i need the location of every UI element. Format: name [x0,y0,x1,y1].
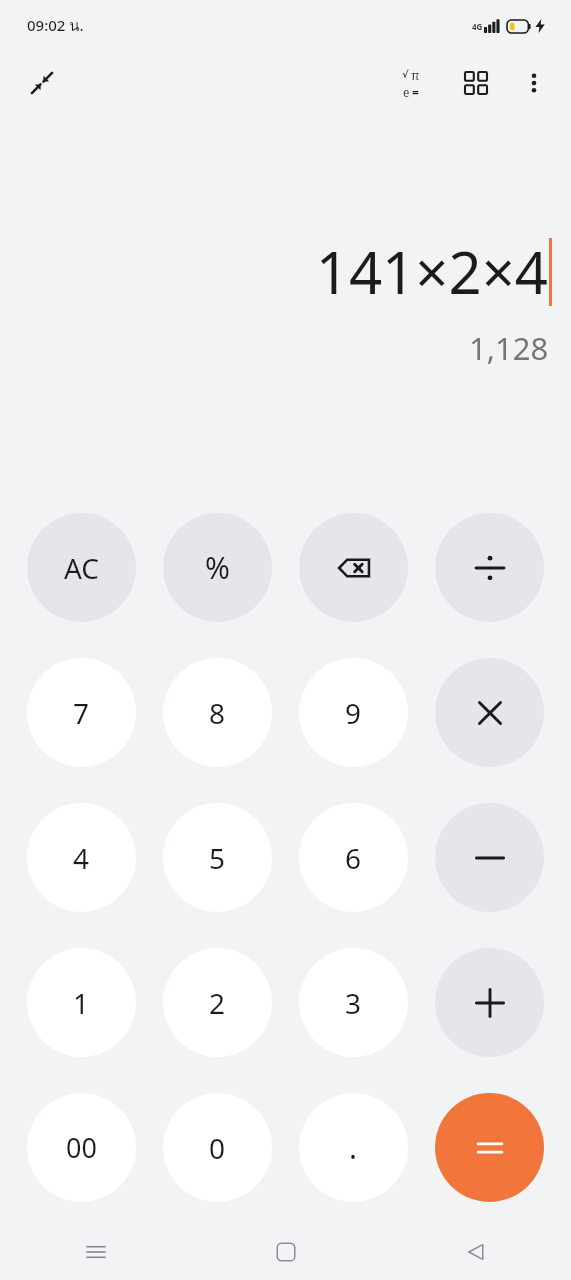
button[interactable]: 3 [299,948,408,1057]
staticText: e [403,84,410,100]
button[interactable]: Back [381,1224,571,1280]
button[interactable]: Collapse [20,61,64,105]
button[interactable]: Divide [435,513,544,622]
button[interactable]: 8 [163,658,272,767]
staticText: 9 [345,694,362,732]
button[interactable]: 0 [163,1093,272,1202]
staticText: AC [64,549,100,587]
staticText: 00 [66,1129,97,1166]
staticText: 09:02 น. [27,14,84,38]
button[interactable]: More options [511,60,557,106]
staticText: . [349,1127,358,1168]
button[interactable]: Scientific [388,60,434,106]
button[interactable]: 9 [299,658,408,767]
staticText: 0 [209,1129,226,1167]
button[interactable]: 6 [299,803,408,912]
staticText: 5 [209,839,226,877]
staticText: 2 [209,984,226,1022]
button[interactable]: Equals [435,1093,544,1202]
button[interactable]: 4 [27,803,136,912]
button[interactable]: AC [27,513,136,622]
button[interactable]: . [299,1093,408,1202]
staticText: 6 [345,839,362,877]
button[interactable]: Home [191,1224,381,1280]
staticText: 1,128 [469,327,549,369]
button[interactable]: Recent apps [0,1224,191,1280]
staticText: 3 [345,984,362,1022]
staticText: % [205,547,230,588]
button[interactable]: % [163,513,272,622]
button[interactable]: Plus [435,948,544,1057]
staticText: 4G [472,21,483,32]
button[interactable]: 2 [163,948,272,1057]
button[interactable]: 7 [27,658,136,767]
staticText: 7 [73,694,90,732]
button[interactable]: Multiply [435,658,544,767]
staticText: 8 [209,694,226,732]
staticText: 4 [73,839,90,877]
button[interactable]: 00 [27,1093,136,1202]
button[interactable]: Backspace [299,513,408,622]
button[interactable]: Unit converter [453,60,499,106]
staticText: = [412,84,419,100]
button[interactable]: 5 [163,803,272,912]
button[interactable]: 1 [27,948,136,1057]
staticText: √ [402,69,409,81]
staticText: 141×2×4 [315,232,548,311]
staticText: π [411,66,420,84]
button[interactable]: Minus [435,803,544,912]
staticText: 1 [73,984,90,1022]
